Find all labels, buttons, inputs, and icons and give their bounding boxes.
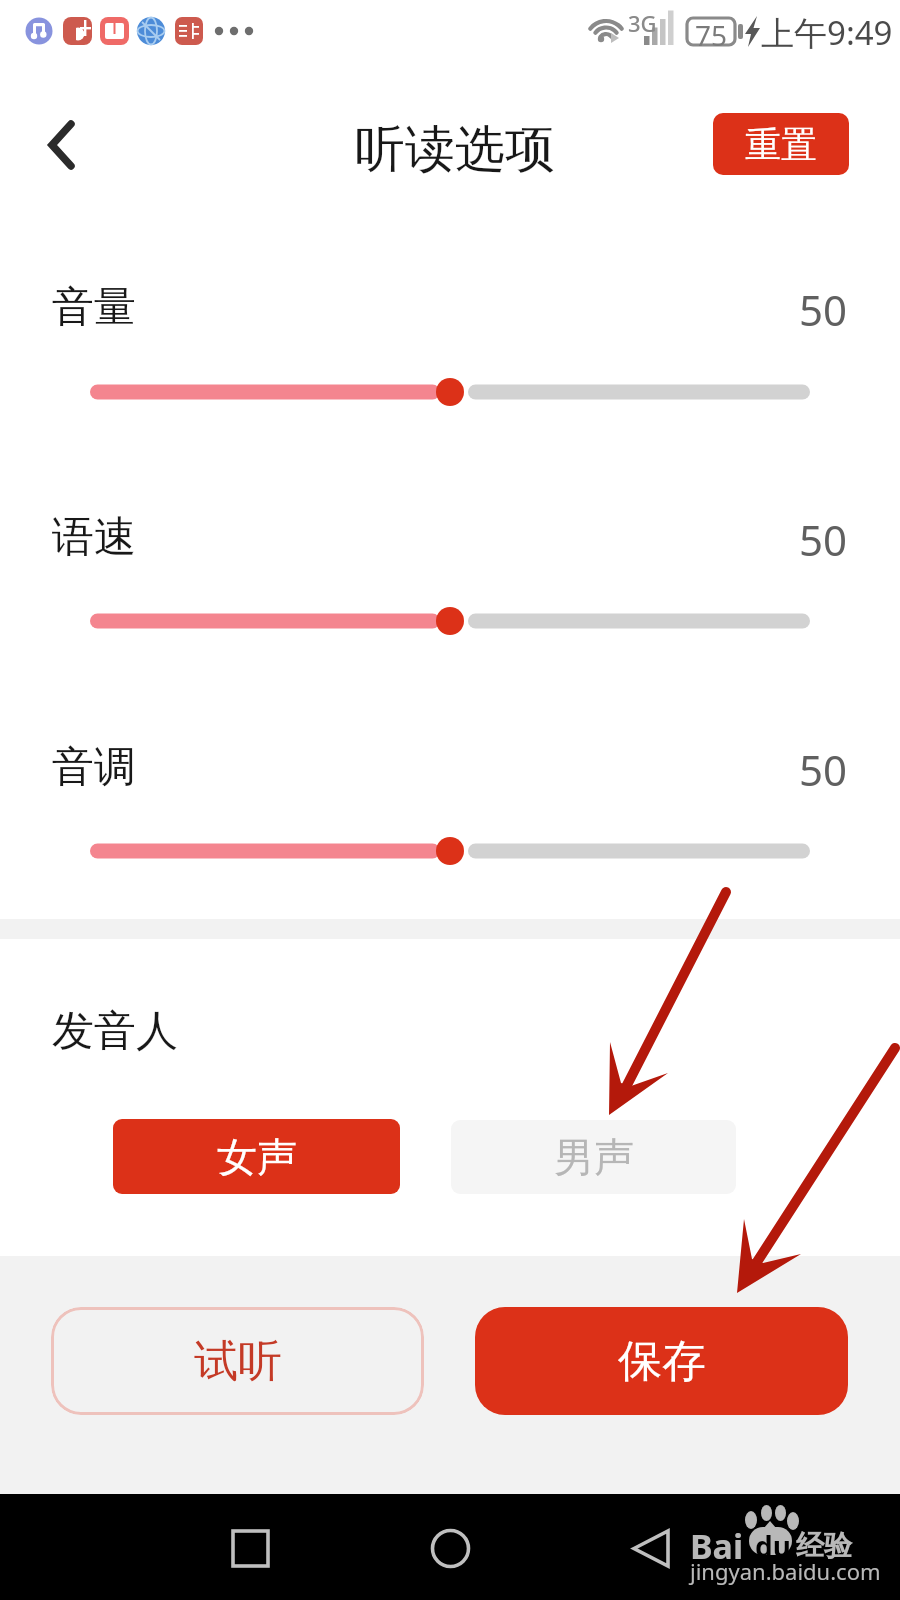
button[interactable]: 试听 (51, 1307, 424, 1415)
staticText: 听读选项 (355, 118, 555, 181)
staticText: 50 (799, 281, 848, 338)
staticText: 男声 (554, 1132, 634, 1182)
staticText: 经验 (796, 1528, 852, 1563)
button[interactable]: 语速 (70, 591, 830, 651)
button[interactable]: 男声 (451, 1120, 736, 1194)
button[interactable]: Recents (215, 1513, 285, 1583)
staticText: Bai (690, 1523, 744, 1569)
staticText: 上午9:49 (761, 10, 893, 55)
button[interactable]: 重置 (713, 113, 849, 175)
staticText: jingyan.baidu.com (690, 1556, 881, 1586)
button[interactable]: Home (415, 1513, 485, 1583)
staticText: 75 (695, 16, 728, 54)
staticText: 女声 (217, 1132, 297, 1182)
staticText: 语速 (52, 511, 136, 564)
button[interactable]: Back (615, 1513, 685, 1583)
button[interactable]: Back (20, 110, 90, 180)
button[interactable]: 音量 (70, 362, 830, 422)
staticText: 保存 (618, 1334, 706, 1389)
staticText: 50 (799, 511, 848, 568)
staticText: 重置 (745, 122, 817, 167)
staticText: 发音人 (52, 1005, 178, 1058)
staticText: 音量 (52, 281, 136, 334)
staticText: 音调 (52, 741, 136, 794)
staticText: 3G (628, 8, 657, 38)
staticText: du (755, 1527, 791, 1565)
button[interactable]: 保存 (475, 1307, 848, 1415)
button[interactable]: 音调 (70, 821, 830, 881)
staticText: 试听 (194, 1334, 282, 1389)
button[interactable]: 女声 (113, 1119, 400, 1194)
staticText: 50 (799, 741, 848, 798)
